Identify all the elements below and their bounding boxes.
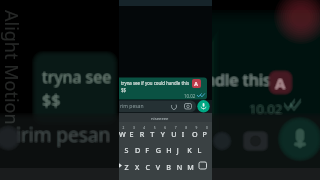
button[interactable] — [0, 0, 320, 180]
